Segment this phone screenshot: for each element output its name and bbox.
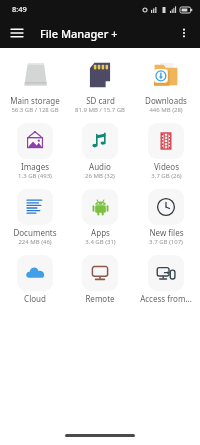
button[interactable]: More options [173,22,195,44]
staticText: Apps [91,227,110,238]
staticText: New files [149,227,184,238]
staticText: Main storage [10,95,60,106]
staticText: Images [21,161,49,172]
staticText: 26 MB (32) [85,172,115,180]
button[interactable]: Videos [135,120,197,183]
staticText: 3.7 GB (26) [151,172,182,180]
button[interactable]: Apps [69,186,131,249]
staticText: 56.3 GB / 128 GB [11,106,59,114]
staticText: Audio [89,161,111,172]
button[interactable]: Remote [69,252,131,307]
button[interactable]: Cloud [4,252,66,307]
button[interactable]: SD card [69,54,131,117]
staticText: Downloads [145,95,187,106]
staticText: Documents [13,227,57,238]
staticText: Cloud [24,293,46,304]
button[interactable]: New files [135,186,197,249]
staticText: 81.9 MB / 15.7 GB [75,106,125,114]
staticText: 3.7 GB (107) [149,238,183,246]
button[interactable]: Audio [69,120,131,183]
button[interactable]: Images [4,120,66,183]
staticText: Videos [154,161,179,172]
staticText: Access from... [140,293,192,304]
button[interactable]: Documents [4,186,66,249]
staticText: 446 MB (28) [149,106,183,114]
staticText: 1.3 GB (493) [18,172,52,180]
staticText: 8:49 [12,4,27,14]
staticText: 3.4 GB (31) [85,238,116,246]
button[interactable]: Downloads [135,54,197,117]
staticText: 224 MB (46) [18,238,52,246]
staticText: SD card [86,95,115,106]
button[interactable]: Access from... [135,252,197,307]
staticText: File Manager + [40,26,118,41]
button[interactable]: Open navigation menu [6,22,28,44]
staticText: Remote [85,293,115,304]
button[interactable]: Main storage [4,54,66,117]
